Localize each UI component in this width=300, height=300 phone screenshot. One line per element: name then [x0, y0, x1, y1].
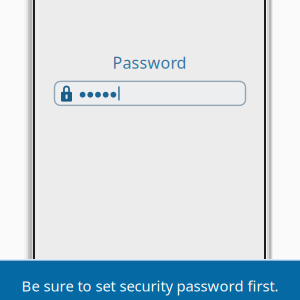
- staticText: Be sure to set security password first.: [21, 276, 278, 295]
- button[interactable]: [54, 81, 245, 105]
- button[interactable]: Be sure to set security password first.: [0, 259, 300, 300]
- staticText: Password: [112, 52, 186, 73]
